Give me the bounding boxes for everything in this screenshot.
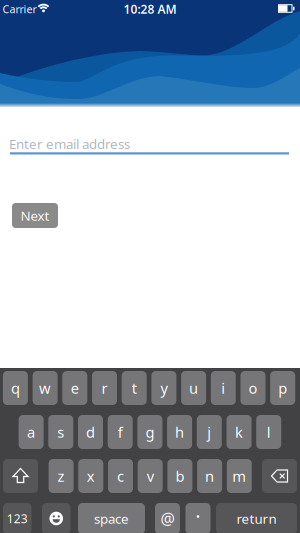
button[interactable]: s (48, 415, 73, 449)
button[interactable]: return (216, 503, 297, 533)
button[interactable]: n (197, 459, 222, 493)
button[interactable]: space (78, 503, 145, 533)
button[interactable]: f (108, 415, 133, 449)
staticText: a (27, 422, 35, 442)
staticText: d (86, 422, 95, 442)
staticText: w (39, 378, 51, 398)
staticText: p (278, 378, 287, 398)
button[interactable]: x (78, 459, 103, 493)
button[interactable]: g (137, 415, 162, 449)
button[interactable]: 123 (3, 503, 31, 533)
button[interactable]: z (49, 459, 74, 493)
staticText: b (175, 466, 184, 486)
staticText: t (132, 378, 137, 398)
staticText: x (87, 466, 95, 486)
button[interactable]: i (211, 371, 236, 405)
button[interactable]: t (122, 371, 147, 405)
button[interactable]: r (92, 371, 117, 405)
staticText: g (145, 422, 154, 442)
staticText: Next (20, 207, 49, 224)
button[interactable]: b (167, 459, 192, 493)
staticText: z (58, 466, 65, 486)
button[interactable]: u (181, 371, 206, 405)
button[interactable]: q (3, 371, 28, 405)
staticText: 123 (7, 510, 28, 526)
staticText: c (117, 466, 124, 486)
button[interactable]: m (227, 459, 252, 493)
button[interactable]: h (167, 415, 192, 449)
button[interactable]: d (78, 415, 103, 449)
button[interactable]: w (33, 371, 58, 405)
button[interactable]: Enter email address (9, 131, 289, 155)
button[interactable]: l (256, 415, 281, 449)
button[interactable]: o (240, 371, 265, 405)
staticText: h (175, 422, 184, 442)
staticText: u (189, 378, 198, 398)
button[interactable]: y (151, 371, 176, 405)
staticText: q (11, 378, 20, 398)
staticText: l (267, 422, 271, 442)
staticText: y (160, 378, 167, 398)
staticText: f (118, 422, 123, 442)
staticText: s (57, 422, 64, 442)
button[interactable]: e (62, 371, 87, 405)
button[interactable]: a (19, 415, 44, 449)
button[interactable]: Period (185, 503, 210, 533)
button[interactable]: Shift (3, 459, 38, 493)
button[interactable]: p (270, 371, 295, 405)
button[interactable]: j (197, 415, 222, 449)
button[interactable]: Emoji (42, 503, 70, 533)
staticText: space (94, 510, 129, 527)
staticText: j (207, 422, 211, 442)
staticText: Enter email address (9, 135, 130, 153)
staticText: k (235, 422, 243, 442)
button[interactable]: Delete (262, 459, 297, 493)
staticText: @ (160, 508, 174, 529)
staticText: return (236, 510, 276, 527)
button[interactable]: @ (155, 503, 180, 533)
button[interactable]: c (108, 459, 133, 493)
staticText: r (101, 378, 107, 398)
staticText: m (232, 466, 246, 486)
button[interactable]: v (138, 459, 163, 493)
staticText: o (248, 378, 257, 398)
staticText: e (71, 378, 79, 398)
staticText: v (147, 466, 154, 486)
staticText: i (221, 378, 225, 398)
staticText: Carrier (2, 2, 36, 16)
staticText: n (205, 466, 214, 486)
button[interactable]: k (226, 415, 251, 449)
button[interactable]: Next (12, 203, 58, 228)
staticText: 10:28 AM (123, 1, 176, 17)
